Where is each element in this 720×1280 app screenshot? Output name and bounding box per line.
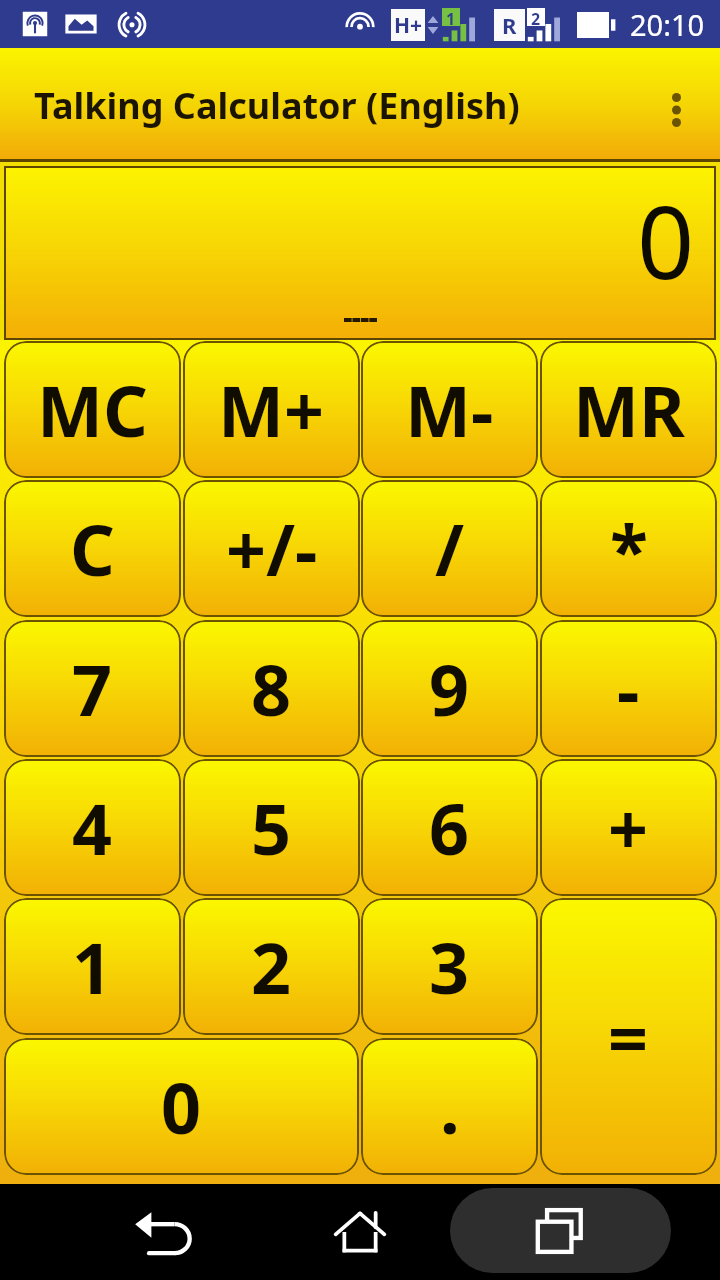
staticText: 8	[251, 641, 292, 736]
staticText: 0	[637, 172, 695, 308]
button[interactable]: C	[4, 480, 181, 617]
staticText: 5	[251, 780, 292, 875]
staticText: *	[610, 501, 648, 596]
staticText: C	[70, 501, 115, 596]
button[interactable]: =	[540, 898, 717, 1175]
button[interactable]: Back	[117, 1186, 209, 1278]
button[interactable]: .	[361, 1038, 538, 1175]
staticText: 2	[251, 919, 292, 1014]
staticText: +	[608, 780, 649, 875]
button[interactable]: M+	[183, 341, 360, 478]
button[interactable]: 7	[4, 620, 181, 757]
staticText: M-	[405, 362, 494, 457]
staticText: 7	[72, 641, 113, 736]
button[interactable]: 8	[183, 620, 360, 757]
staticText: +/-	[226, 501, 318, 596]
button[interactable]: Home	[314, 1186, 406, 1278]
button[interactable]: 2	[183, 898, 360, 1035]
staticText: 1	[72, 919, 113, 1014]
staticText: 2	[531, 8, 541, 26]
staticText: 0	[161, 1059, 202, 1154]
button[interactable]: More options	[632, 48, 720, 162]
button[interactable]: +	[540, 759, 717, 896]
staticText: 3	[429, 919, 470, 1014]
button[interactable]: 3	[361, 898, 538, 1035]
staticText: .	[440, 1059, 460, 1154]
button[interactable]: 0	[4, 1038, 359, 1175]
button[interactable]: Recent apps	[450, 1188, 671, 1273]
button[interactable]: 6	[361, 759, 538, 896]
staticText: -	[617, 641, 640, 736]
staticText: MC	[37, 362, 148, 457]
button[interactable]: MR	[540, 341, 717, 478]
staticText: M+	[218, 362, 325, 457]
staticText: R	[502, 10, 517, 40]
staticText: 20:10	[630, 5, 705, 44]
staticText: 9	[429, 641, 470, 736]
button[interactable]: /	[361, 480, 538, 617]
staticText: 6	[429, 780, 470, 875]
button[interactable]: *	[540, 480, 717, 617]
button[interactable]: -	[540, 620, 717, 757]
staticText: 4	[72, 780, 113, 875]
staticText: H+	[394, 11, 423, 40]
staticText: /	[435, 501, 465, 596]
button[interactable]: M-	[361, 341, 538, 478]
staticText: =	[608, 989, 649, 1084]
staticText: Talking Calculator (English)	[34, 81, 520, 130]
button[interactable]: 1	[4, 898, 181, 1035]
button[interactable]: 4	[4, 759, 181, 896]
staticText: 1	[446, 8, 456, 26]
staticText: MR	[573, 362, 685, 457]
button[interactable]: +/-	[183, 480, 360, 617]
button[interactable]: MC	[4, 341, 181, 478]
button[interactable]: 9	[361, 620, 538, 757]
button[interactable]: 5	[183, 759, 360, 896]
